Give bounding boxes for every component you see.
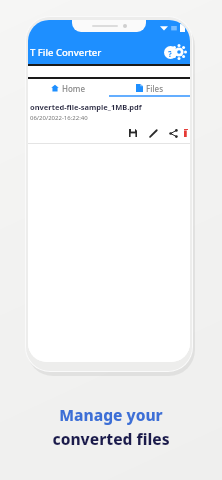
staticText: ? bbox=[168, 47, 173, 59]
staticText: converted files bbox=[52, 428, 170, 449]
staticText: onverted-file-sample_1MB.pdf bbox=[30, 102, 142, 112]
staticText: Home bbox=[62, 83, 86, 94]
button[interactable]: Settings bbox=[180, 42, 190, 62]
staticText: 06/20/2022-16:22:40 bbox=[30, 114, 88, 122]
button[interactable]: Save bbox=[125, 126, 141, 140]
button[interactable]: Home bbox=[28, 79, 109, 97]
staticText: T File Converter bbox=[30, 46, 102, 59]
button[interactable]: onverted-file-sample_1MB.pdf bbox=[28, 97, 190, 144]
staticText: Manage your bbox=[59, 404, 163, 425]
staticText: Files bbox=[146, 83, 164, 94]
button[interactable]: Help bbox=[160, 42, 180, 62]
button[interactable]: Files bbox=[109, 79, 190, 97]
button[interactable]: Share bbox=[165, 126, 181, 140]
button[interactable]: Delete bbox=[184, 126, 190, 140]
button[interactable]: Edit bbox=[145, 126, 161, 140]
